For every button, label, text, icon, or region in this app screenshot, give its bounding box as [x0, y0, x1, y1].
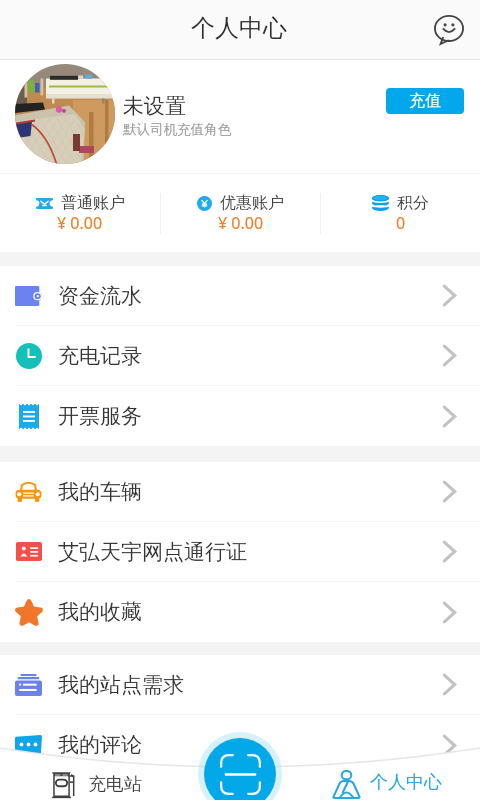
staticText: 默认司机充值角色	[123, 121, 231, 138]
button[interactable]: 充电站	[51, 769, 142, 800]
staticText: 我的车辆	[58, 479, 142, 505]
staticText: 充电记录	[58, 343, 142, 369]
staticText: 0	[396, 212, 406, 234]
button[interactable]: 个人中心	[332, 765, 442, 800]
button[interactable]: 充值	[386, 88, 464, 114]
button[interactable]: 艾弘天宇网点通行证	[0, 522, 480, 582]
button[interactable]: Scan QR code	[204, 738, 276, 800]
staticText: 艾弘天宇网点通行证	[58, 539, 247, 565]
staticText: 个人中心	[191, 13, 287, 43]
staticText: 我的收藏	[58, 599, 142, 625]
button[interactable]: 资金流水	[0, 266, 480, 326]
staticText: 充值	[409, 91, 441, 111]
staticText: 优惠账户	[220, 193, 284, 213]
staticText: 普通账户	[61, 193, 125, 213]
staticText: 个人中心	[370, 771, 442, 794]
staticText: 未设置	[123, 93, 186, 119]
button[interactable]: 优惠账户	[161, 174, 320, 252]
button[interactable]: Feedback	[428, 8, 470, 50]
staticText: 积分	[397, 193, 429, 213]
button[interactable]: 普通账户	[0, 174, 160, 252]
staticText: 我的评论	[58, 732, 142, 758]
staticText: ¥ 0.00	[57, 212, 103, 234]
button[interactable]: 积分	[321, 174, 480, 252]
button[interactable]: 开票服务	[0, 386, 480, 446]
staticText: ¥ 0.00	[218, 212, 264, 234]
staticText: 开票服务	[58, 403, 142, 429]
button[interactable]: 我的站点需求	[0, 655, 480, 715]
staticText: 充电站	[88, 773, 142, 796]
button[interactable]: 我的车辆	[0, 462, 480, 522]
button[interactable]: 我的评论	[0, 715, 480, 775]
staticText: 我的站点需求	[58, 672, 184, 698]
button[interactable]: 我的收藏	[0, 582, 480, 642]
staticText: 资金流水	[58, 283, 142, 309]
button[interactable]: 充电记录	[0, 326, 480, 386]
